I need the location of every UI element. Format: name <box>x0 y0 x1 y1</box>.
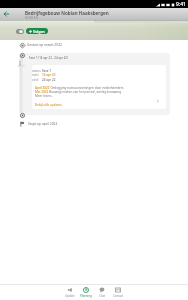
staticText: 9:41 <box>176 1 186 8</box>
staticText: Stopt op april 2022 <box>28 121 58 125</box>
staticText: Bedrijfsgebouw Nobian Haaksbergen <box>25 10 109 16</box>
button[interactable]: Volgen <box>26 28 48 34</box>
button[interactable]: Back <box>0 8 11 19</box>
button[interactable]: Update <box>64 286 76 299</box>
staticText: Update <box>65 294 75 298</box>
staticText: Bekijk alle updates <box>35 103 62 107</box>
staticText: Contact <box>113 294 124 298</box>
staticText: Planning <box>80 294 92 298</box>
staticText: NOBIAN <box>25 16 39 20</box>
staticText: eind <box>32 78 39 82</box>
button[interactable]: Notifications <box>16 29 24 34</box>
staticText: Fase 1 <box>42 69 52 73</box>
staticText: Fase 1 <box>17 59 25 66</box>
staticText: start <box>32 73 39 77</box>
staticText: status <box>32 69 41 73</box>
button[interactable]: status <box>32 65 166 109</box>
staticText: Fase 1 (14 apr 22 - 24 apr 22) <box>29 56 68 60</box>
button[interactable]: Planning <box>80 286 92 299</box>
staticText: Chat <box>99 294 106 298</box>
staticText: April 2022 Omlegging nutsvoorzieningen d… <box>35 86 124 98</box>
staticText: 14 apr 22 <box>42 73 56 77</box>
staticText: 24 apr 22 <box>42 78 56 82</box>
button[interactable]: Contact <box>112 286 124 299</box>
staticText: Volgen <box>33 29 45 34</box>
button[interactable]: Chat <box>96 286 108 299</box>
staticText: Gestart op maart 2022 <box>27 42 62 46</box>
